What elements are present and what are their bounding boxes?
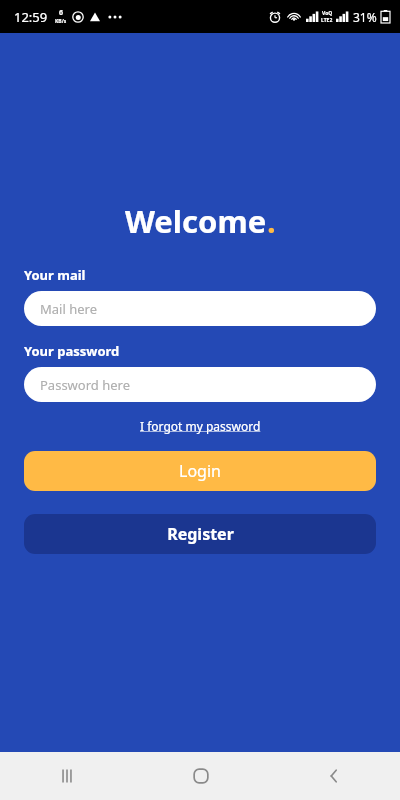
button[interactable]: Login	[24, 451, 376, 491]
staticText: KB/s	[55, 18, 67, 25]
staticText: Welcome	[125, 200, 267, 242]
staticText: 6	[59, 8, 64, 18]
button[interactable]: Recent apps	[0, 752, 134, 800]
staticText: Your mail	[24, 266, 86, 284]
button[interactable]: Home	[134, 752, 267, 800]
staticText: Password here	[40, 376, 130, 394]
staticText: 12:59	[14, 8, 48, 26]
staticText: LTE2	[321, 17, 333, 24]
button[interactable]: Mail here	[24, 291, 376, 326]
button[interactable]: Back	[267, 752, 400, 800]
button[interactable]: Register	[24, 514, 376, 554]
staticText: Register	[167, 523, 234, 545]
staticText: I forgot my password	[140, 418, 261, 434]
button[interactable]: Password here	[24, 367, 376, 402]
staticText: VoQ	[322, 10, 333, 17]
staticText: 31%	[353, 9, 377, 25]
staticText: Mail here	[40, 300, 97, 318]
staticText: .	[267, 200, 276, 242]
button[interactable]: I forgot my password	[136, 416, 265, 436]
staticText: Your password	[24, 342, 120, 360]
staticText: Login	[179, 460, 221, 482]
